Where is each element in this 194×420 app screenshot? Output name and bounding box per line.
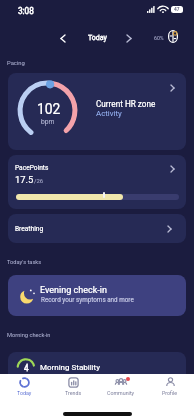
staticText: 60%: [154, 35, 164, 41]
staticText: Breathing: [15, 225, 44, 233]
staticText: Pacing: [7, 60, 25, 67]
staticText: 47: [174, 7, 180, 13]
staticText: Record your symptoms and more: [41, 296, 134, 303]
staticText: Trends: [65, 390, 82, 396]
staticText: Community: [107, 390, 135, 396]
button[interactable]: Energy level: [154, 30, 178, 43]
button[interactable]: Next day: [122, 31, 136, 45]
staticText: Today: [88, 34, 107, 42]
button[interactable]: Trends: [49, 374, 97, 396]
staticText: Today: [17, 390, 32, 396]
button[interactable]: 102: [8, 73, 186, 150]
staticText: 4: [24, 363, 29, 373]
staticText: Current HR zone: [96, 99, 156, 109]
button[interactable]: 4: [8, 352, 186, 392]
staticText: /26: [34, 177, 44, 184]
button[interactable]: Today: [0, 374, 48, 396]
button[interactable]: Evening check-in: [8, 275, 186, 316]
staticText: 102: [37, 101, 61, 117]
staticText: bpm: [41, 118, 55, 126]
staticText: Morning Stability: [40, 363, 100, 372]
staticText: Activity: [96, 109, 122, 118]
button[interactable]: Previous day: [56, 31, 70, 45]
staticText: Today's tasks: [7, 259, 42, 266]
button[interactable]: Community: [97, 374, 145, 396]
staticText: 3:08: [18, 6, 34, 16]
staticText: PacePoints: [15, 164, 49, 172]
button[interactable]: PacePoints: [8, 155, 186, 209]
staticText: Evening check-in: [40, 285, 107, 296]
staticText: Morning check-in: [7, 332, 51, 339]
button[interactable]: Breathing: [8, 214, 186, 243]
staticText: Profile: [162, 390, 178, 396]
button[interactable]: Profile: [146, 374, 194, 396]
staticText: 17.5: [15, 174, 34, 185]
